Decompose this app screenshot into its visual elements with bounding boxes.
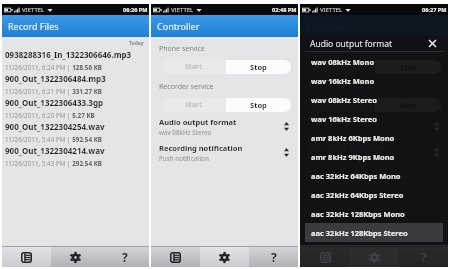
button[interactable]: aac 32kHz 64Kbps Mono — [305, 166, 443, 185]
button[interactable]: aac 32kHz 128Kbps Mono — [305, 204, 443, 223]
staticText: ? — [122, 249, 128, 265]
staticText: 0938288316_In_1322306646.mp3 — [5, 49, 132, 60]
button[interactable]: wav 08kHz Mono — [305, 52, 443, 71]
staticText: 11/26/2011, 5:43 PM | 292.54 KB — [5, 159, 103, 168]
button[interactable]: Start — [162, 98, 226, 112]
staticText: aac 32kHz 128Kbps Stereo — [311, 228, 408, 238]
staticText: ? — [421, 249, 427, 265]
staticText: wav 08kHz Stereo — [159, 128, 212, 135]
button[interactable]: Recording notification — [151, 143, 298, 161]
button[interactable]: Stop — [226, 60, 291, 74]
staticText: Start — [185, 100, 203, 110]
staticText: amr 8kHz 6Kbps Mono — [311, 133, 395, 143]
button[interactable]: wav 16kHz Stereo — [305, 109, 443, 128]
button[interactable]: aac 32kHz 128Kbps Stereo — [305, 223, 443, 242]
button[interactable]: Audio output format — [151, 117, 298, 135]
staticText: Recording notification — [159, 143, 243, 153]
staticText: Phone service — [308, 44, 354, 54]
staticText: Controller — [157, 20, 200, 32]
staticText: VIETTEL — [320, 6, 343, 14]
button[interactable]: Close — [427, 38, 438, 49]
staticText: Recorder service — [159, 82, 214, 92]
staticText: Audio output format — [159, 117, 237, 127]
staticText: Audio output format — [310, 38, 427, 50]
button[interactable]: wav 08kHz Stereo — [305, 90, 443, 109]
button[interactable]: amr 8kHz 6Kbps Mono — [305, 128, 443, 147]
staticText: Stop — [400, 100, 417, 110]
button[interactable]: Record files — [300, 247, 350, 267]
button[interactable]: 900_Out_1322306484.mp3 — [2, 72, 149, 96]
button[interactable]: Settings — [51, 247, 100, 267]
staticText: wav 16kHz Stereo — [311, 114, 377, 124]
staticText: 900_Out_1322304254.wav — [5, 121, 105, 132]
button[interactable]: 0938288316_In_1322306646.mp3 — [2, 48, 149, 72]
button[interactable]: 900_Out_1322306433.3gp — [2, 96, 149, 120]
staticText: VIETTEL — [171, 6, 194, 14]
staticText: aac 32kHz 128Kbps Mono — [311, 209, 405, 219]
button[interactable]: aac 32kHz 64Kbps Stereo — [305, 185, 443, 204]
staticText: 02:48 PM — [272, 6, 297, 14]
staticText: wav 16kHz Mono — [311, 76, 375, 86]
staticText: 11/26/2011, 5:44 PM | 592.54 KB — [5, 135, 103, 144]
staticText: amr 8kHz 9Kbps Mono — [311, 152, 395, 162]
button[interactable]: Help — [249, 247, 298, 267]
staticText: 11/26/2011, 6:20 PM | 5.27 KB — [5, 111, 95, 120]
staticText: wav 08kHz Mono — [311, 57, 375, 67]
staticText: 900_Out_1322306484.mp3 — [5, 73, 106, 84]
staticText: Stop — [250, 100, 267, 110]
staticText: VIETTEL — [22, 6, 45, 14]
staticText: Audio output format — [308, 117, 386, 127]
staticText: Phone service — [159, 44, 205, 54]
staticText: 900_Out_1322304214.wav — [5, 145, 105, 156]
button[interactable]: Start — [162, 60, 226, 74]
button[interactable]: wav 16kHz Mono — [305, 71, 443, 90]
staticText: 06:27 PM — [422, 6, 447, 14]
staticText: ? — [271, 249, 277, 265]
staticText: Stop — [250, 62, 267, 72]
staticText: aac 32kHz 64Kbps Mono — [311, 171, 401, 181]
button[interactable]: 900_Out_1322304254.wav — [2, 120, 149, 144]
button[interactable]: amr 8kHz 9Kbps Mono — [305, 147, 443, 166]
staticText: wav 08kHz Stereo — [311, 95, 377, 105]
button[interactable]: Help — [100, 247, 149, 267]
staticText: 06:26 PM — [123, 6, 148, 14]
button[interactable]: Help — [399, 247, 448, 267]
staticText: 11/26/2011, 6:24 PM | 128.56 KB — [5, 63, 103, 72]
staticText: Stop — [400, 62, 417, 72]
staticText: 11/26/2011, 6:21 PM | 331.27 KB — [5, 87, 103, 96]
staticText: 900_Out_1322306433.3gp — [5, 97, 103, 108]
button[interactable]: Record files — [151, 247, 200, 267]
button[interactable]: Settings — [350, 247, 399, 267]
staticText: Start — [185, 62, 203, 72]
button[interactable]: Stop — [226, 98, 291, 112]
button[interactable]: Record files — [2, 247, 51, 267]
staticText: Record Files — [8, 20, 59, 32]
staticText: Push notification — [159, 154, 209, 161]
staticText: Recorder service — [308, 82, 363, 92]
staticText: Push notification — [308, 154, 358, 161]
staticText: aac 32kHz 64Kbps Stereo — [311, 190, 404, 200]
button[interactable]: 900_Out_1322304214.wav — [2, 144, 149, 168]
staticText: Today — [129, 40, 144, 47]
button[interactable]: Settings — [200, 247, 249, 267]
